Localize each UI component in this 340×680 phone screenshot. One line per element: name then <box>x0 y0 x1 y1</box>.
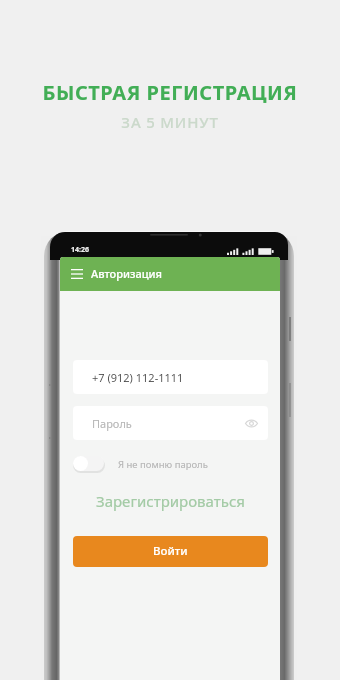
staticText: +7 (912) 112-1111 <box>92 370 184 385</box>
staticText: Войти <box>153 543 188 559</box>
staticText: 14:26 <box>71 245 89 255</box>
staticText: Я не помню пароль <box>118 458 208 471</box>
staticText: ЗА 5 МИНУТ <box>0 112 340 132</box>
button[interactable]: +7 (912) 112-1111 <box>73 360 268 394</box>
button[interactable]: Open navigation menu <box>69 266 85 282</box>
button[interactable]: Зарегистрироваться <box>92 488 249 514</box>
button[interactable]: Пароль <box>73 406 268 440</box>
button[interactable]: Show password <box>243 415 259 431</box>
button[interactable]: Я не помню пароль <box>73 456 268 473</box>
staticText: БЫСТРАЯ РЕГИСТРАЦИЯ <box>0 79 340 106</box>
staticText: Зарегистрироваться <box>96 491 245 511</box>
button[interactable]: Войти <box>73 536 268 567</box>
staticText: Пароль <box>92 416 132 431</box>
staticText: Авторизация <box>91 266 162 281</box>
